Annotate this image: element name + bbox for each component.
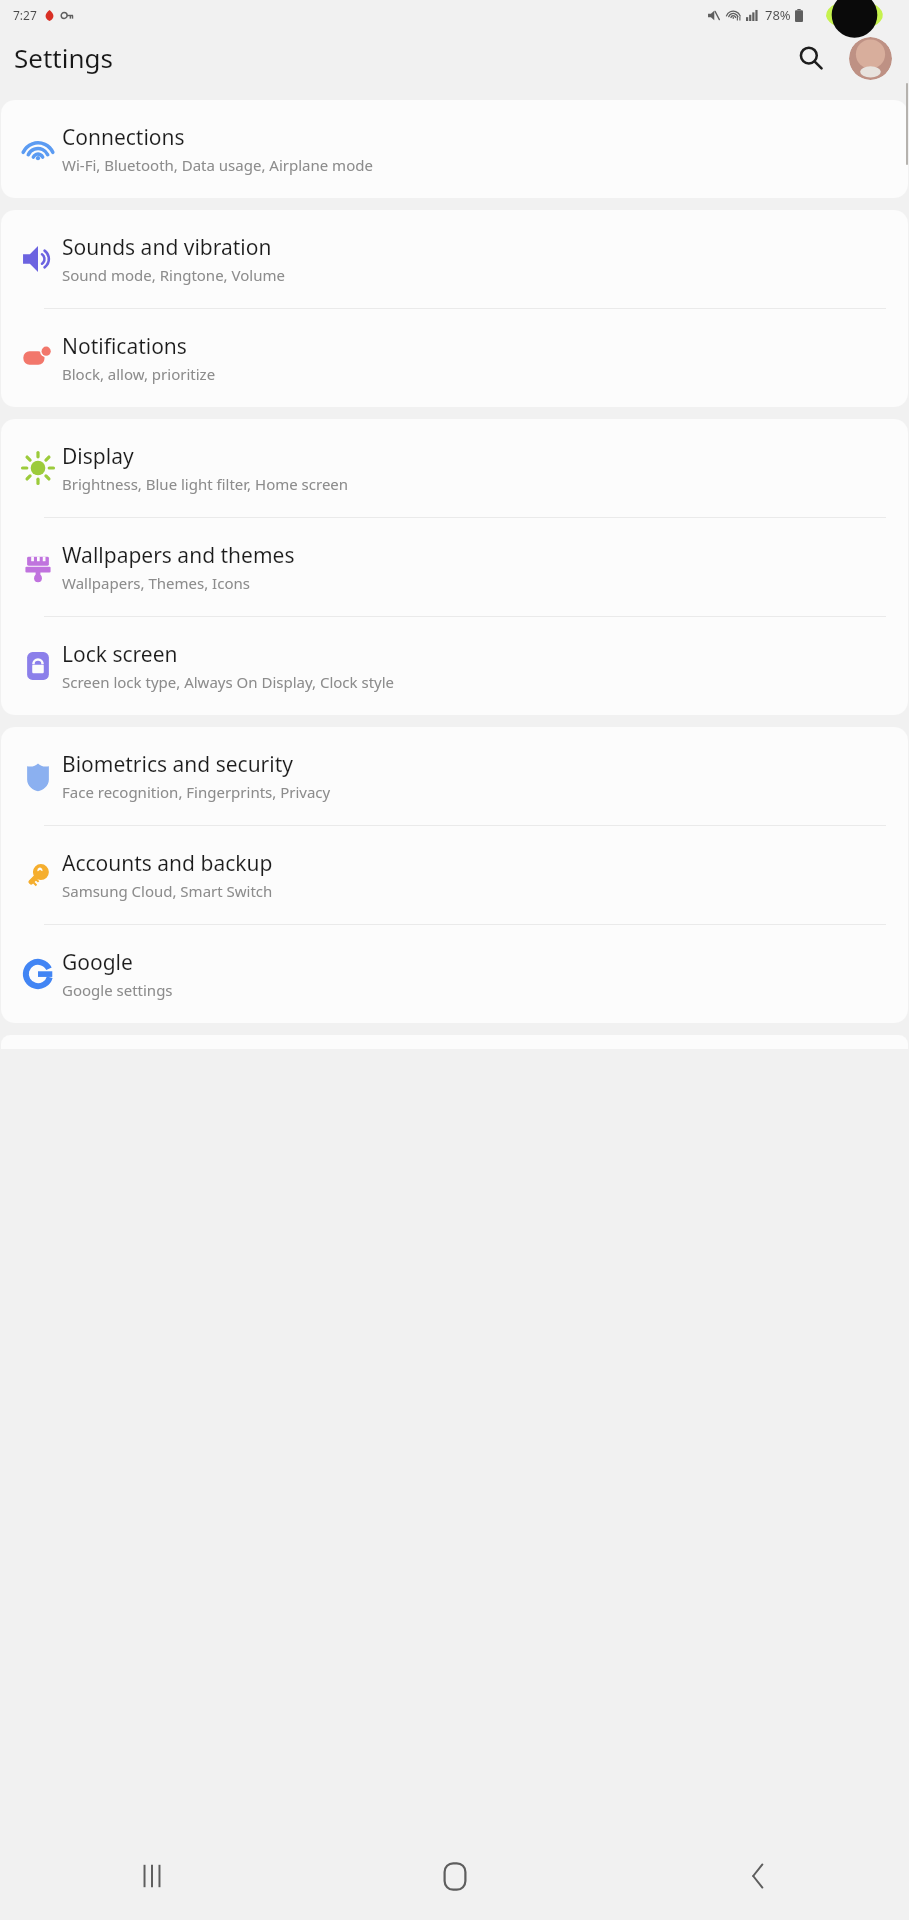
staticText: Wi-Fi, Bluetooth, Data usage, Airplane m… xyxy=(62,155,373,175)
staticText: Sounds and vibration xyxy=(62,233,272,262)
staticText: Wallpapers, Themes, Icons xyxy=(62,573,250,593)
button[interactable]: Home xyxy=(303,1832,606,1920)
staticText: Screen lock type, Always On Display, Clo… xyxy=(62,672,395,692)
button[interactable]: Recents xyxy=(0,1832,303,1920)
staticText: Google xyxy=(62,948,133,977)
button[interactable]: Notifications xyxy=(1,309,908,407)
staticText: Settings xyxy=(14,40,113,75)
staticText: Block, allow, prioritize xyxy=(62,364,216,384)
staticText: Accounts and backup xyxy=(62,849,273,878)
staticText: Lock screen xyxy=(62,640,178,669)
button[interactable]: Back xyxy=(606,1832,909,1920)
button[interactable]: Accounts and backup xyxy=(1,826,908,924)
button[interactable]: Lock screen xyxy=(1,617,908,715)
staticText: Notifications xyxy=(62,332,187,361)
staticText: Samsung Cloud, Smart Switch xyxy=(62,881,273,901)
button[interactable]: Biometrics and security xyxy=(1,727,908,825)
staticText: Google settings xyxy=(62,980,173,1000)
staticText: Connections xyxy=(62,123,185,152)
button[interactable]: Account xyxy=(849,37,892,80)
button[interactable]: Display xyxy=(1,419,908,517)
staticText: Sound mode, Ringtone, Volume xyxy=(62,265,285,285)
staticText: Display xyxy=(62,442,134,471)
button[interactable]: Wallpapers and themes xyxy=(1,518,908,616)
button[interactable]: Sounds and vibration xyxy=(1,210,908,308)
staticText: 7:27 xyxy=(13,7,37,23)
staticText: Face recognition, Fingerprints, Privacy xyxy=(62,782,331,802)
staticText: 78% xyxy=(765,6,791,24)
staticText: Brightness, Blue light filter, Home scre… xyxy=(62,474,349,494)
staticText: Biometrics and security xyxy=(62,750,293,779)
button[interactable]: Connections xyxy=(1,100,908,198)
button[interactable]: Search xyxy=(789,36,833,80)
staticText: Wallpapers and themes xyxy=(62,541,295,570)
button[interactable]: Google xyxy=(1,925,908,1023)
